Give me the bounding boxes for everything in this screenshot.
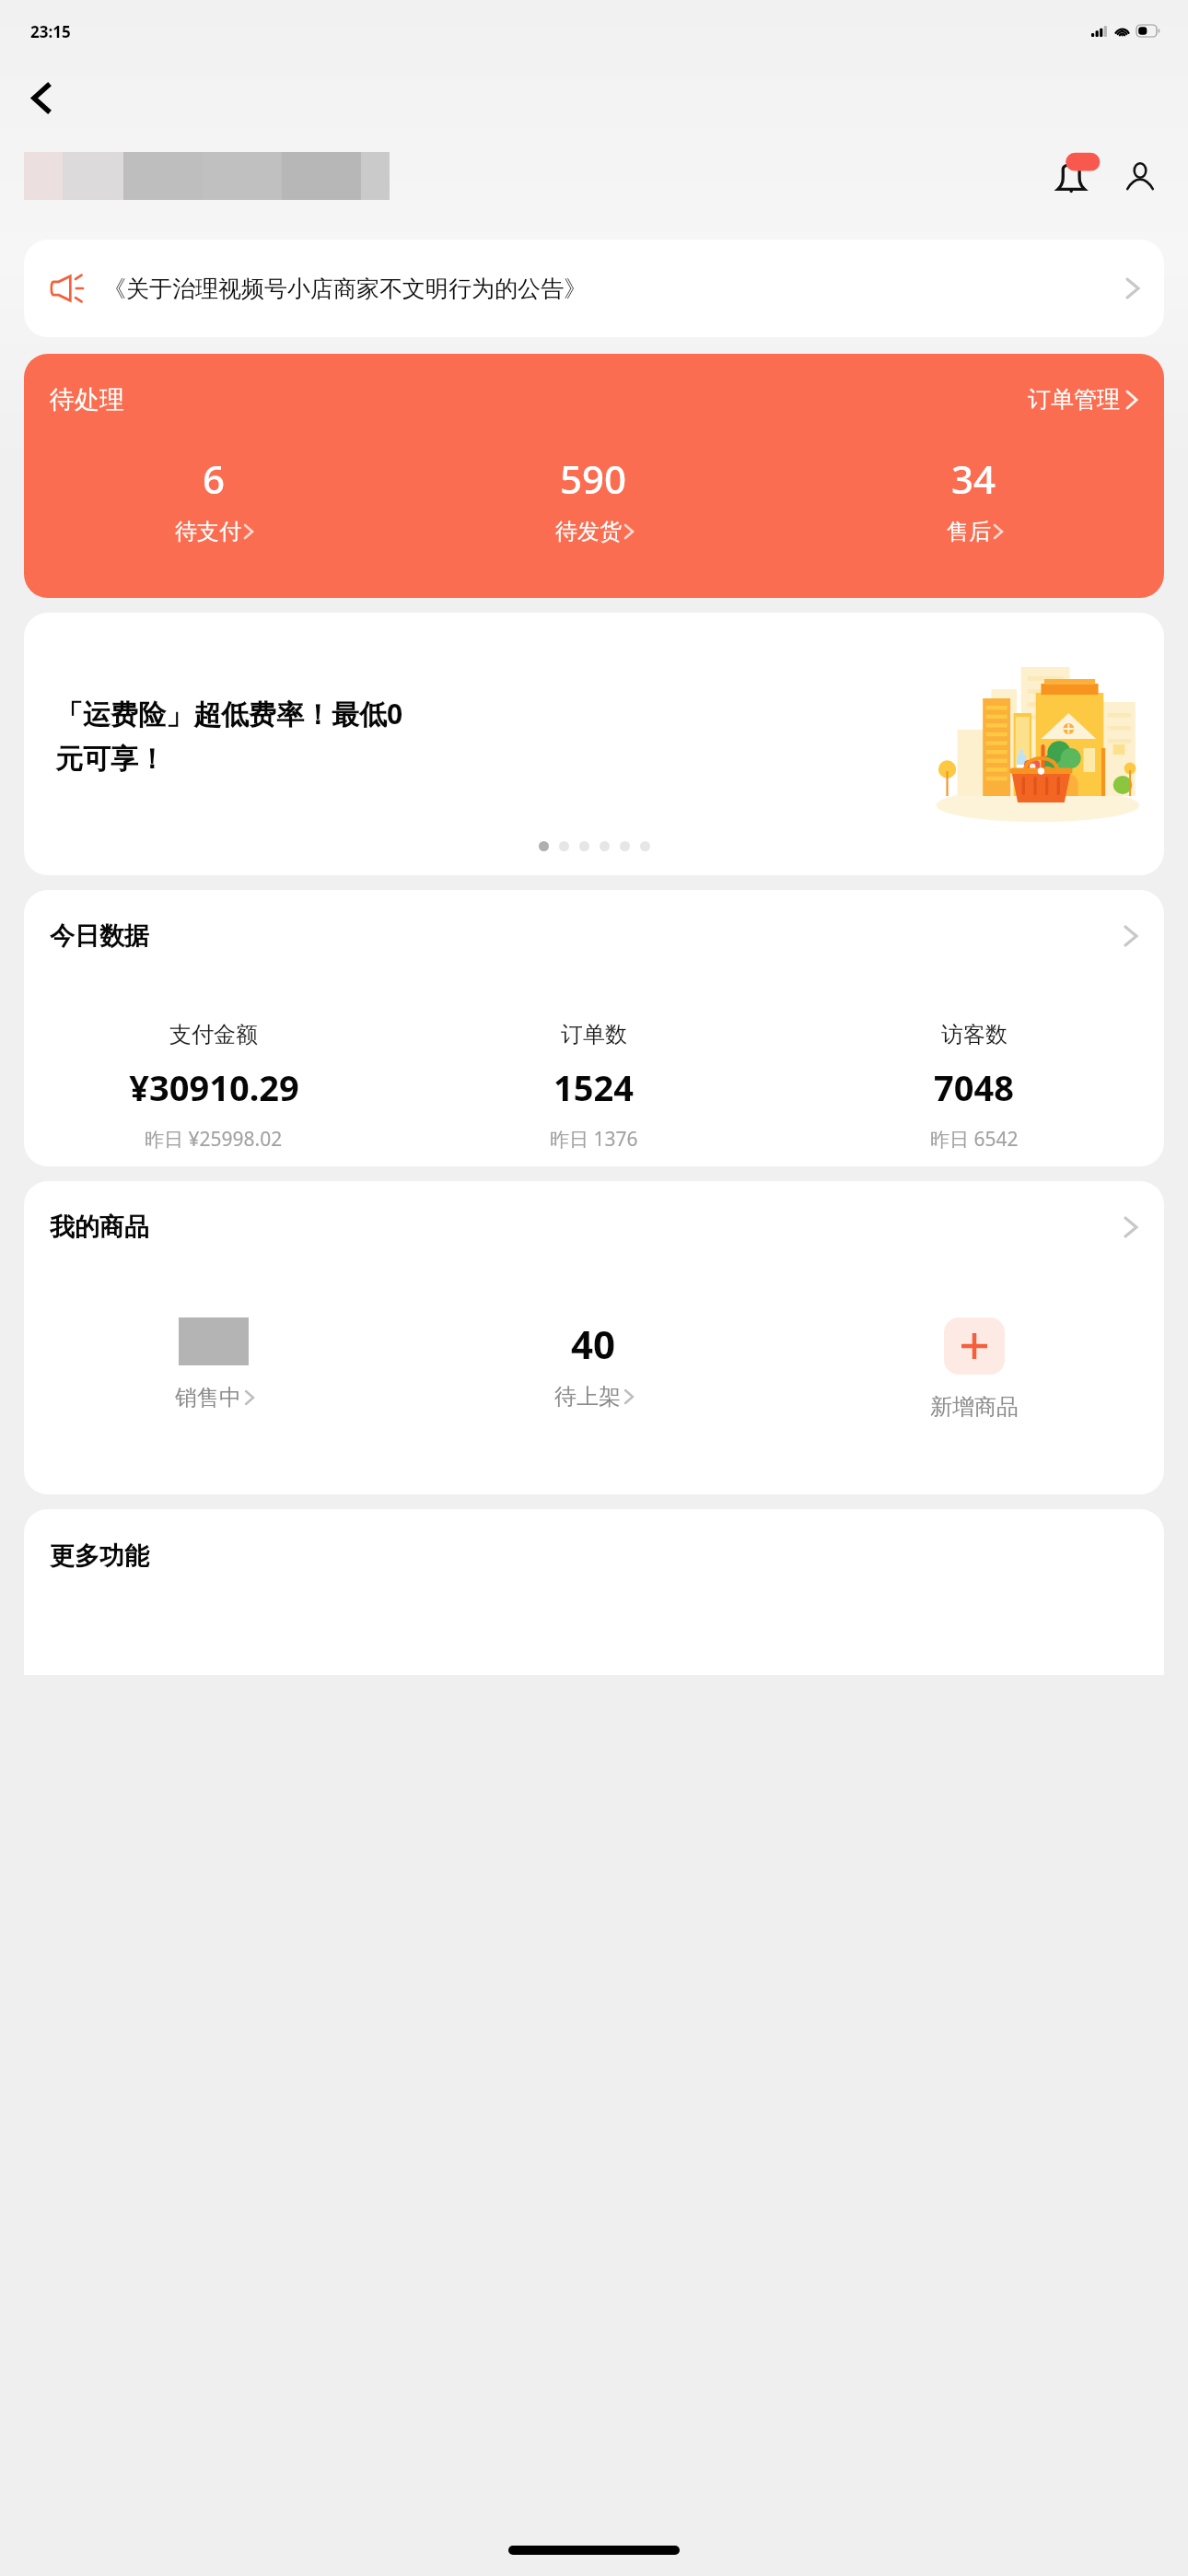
button[interactable]: 新增商品 xyxy=(784,1317,1164,1421)
staticText: 更多功能 xyxy=(50,1540,149,1572)
staticText: 待上架 xyxy=(554,1383,621,1411)
staticText: 我的商品 xyxy=(50,1212,149,1243)
button[interactable]: 40 xyxy=(403,1317,784,1411)
staticText: 新增商品 xyxy=(930,1393,1019,1421)
staticText: 访客数 xyxy=(941,1021,1007,1048)
staticText: 昨日 6542 xyxy=(930,1126,1019,1153)
staticText: 今日数据 xyxy=(50,920,149,952)
button[interactable]: 订单数 xyxy=(403,1021,784,1153)
staticText: 销售中 xyxy=(175,1384,241,1411)
button[interactable]: 访客数 xyxy=(784,1021,1164,1153)
button[interactable]: 590 xyxy=(403,452,784,545)
button[interactable]: 6 xyxy=(24,452,403,545)
button[interactable]: 我的商品 xyxy=(24,1181,1164,1273)
button[interactable]: 支付金额 xyxy=(24,1021,403,1153)
button[interactable]: 订单管理 xyxy=(1024,381,1140,417)
staticText: 支付金额 xyxy=(169,1021,258,1048)
staticText: 待支付 xyxy=(175,518,241,545)
staticText: 待发货 xyxy=(555,518,622,545)
button[interactable]: 销售中 xyxy=(24,1317,403,1411)
staticText: 待处理 xyxy=(50,384,124,416)
staticText: 售后 xyxy=(947,518,991,545)
button[interactable]: 「运费险」超低费率！最低0元可享！ xyxy=(24,613,1164,875)
staticText: 40 xyxy=(571,1317,616,1370)
button[interactable]: Notifications xyxy=(1048,148,1103,204)
button[interactable]: Account xyxy=(1116,152,1164,200)
staticText: 《关于治理视频号小店商家不文明行为的公告》 xyxy=(103,275,1127,303)
button[interactable]: Back xyxy=(17,74,64,122)
staticText: 昨日 1376 xyxy=(550,1126,638,1153)
staticText: ¥30910.29 xyxy=(129,1063,299,1111)
staticText: 7048 xyxy=(934,1063,1014,1111)
staticText: 590 xyxy=(560,452,627,505)
staticText: 23:15 xyxy=(30,21,71,42)
staticText: 昨日 ¥25998.02 xyxy=(145,1126,283,1153)
staticText: 1524 xyxy=(553,1063,634,1111)
button[interactable]: 《关于治理视频号小店商家不文明行为的公告》 xyxy=(24,240,1164,337)
staticText: 「运费险」超低费率！最低0元可享！ xyxy=(55,695,424,777)
button[interactable]: 今日数据 xyxy=(24,890,1164,982)
staticText: 订单数 xyxy=(561,1021,627,1048)
staticText: 订单管理 xyxy=(1028,385,1120,414)
staticText: 34 xyxy=(951,452,996,505)
button[interactable]: 34 xyxy=(784,452,1164,545)
staticText: 6 xyxy=(203,452,226,505)
